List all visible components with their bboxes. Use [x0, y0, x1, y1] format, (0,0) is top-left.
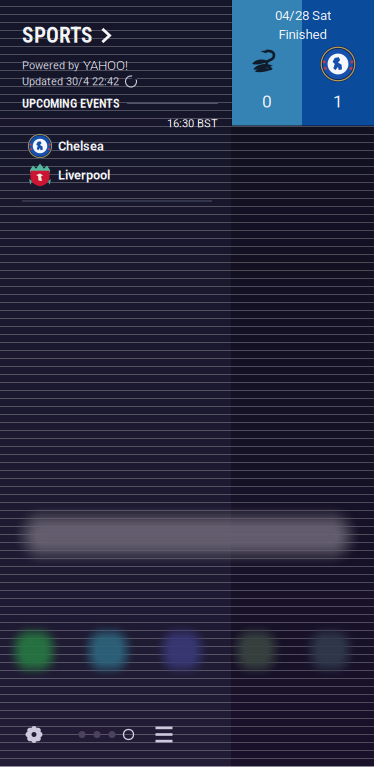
staticText: Updated 30/4 22:42	[22, 75, 119, 88]
button[interactable]: App	[0, 620, 71, 680]
staticText: 1	[333, 91, 343, 112]
staticText: 16:30 BST	[167, 117, 218, 130]
button[interactable]: App	[145, 620, 219, 680]
staticText: 04/28 Sat	[275, 8, 331, 23]
button[interactable]: App	[219, 620, 293, 680]
button[interactable]: Search	[9, 500, 365, 570]
staticText: Powered by	[22, 59, 79, 72]
button[interactable]: App	[293, 620, 367, 680]
button[interactable]: All apps	[141, 712, 187, 756]
button[interactable]: App	[71, 620, 145, 680]
button[interactable]: 04/28 Sat	[232, 0, 374, 125]
staticText: YAHOO!	[83, 58, 128, 73]
button[interactable]: 16:30 BST	[22, 115, 218, 201]
staticText: SPORTS	[22, 23, 93, 48]
staticText: UPCOMING EVENTS	[22, 96, 120, 111]
button[interactable]: Settings	[11, 712, 57, 756]
staticText: 0	[262, 91, 272, 112]
staticText: Chelsea	[58, 138, 104, 153]
staticText: Liverpool	[58, 167, 110, 182]
staticText: Finished	[278, 27, 327, 42]
button[interactable]: SPORTS	[22, 23, 218, 47]
